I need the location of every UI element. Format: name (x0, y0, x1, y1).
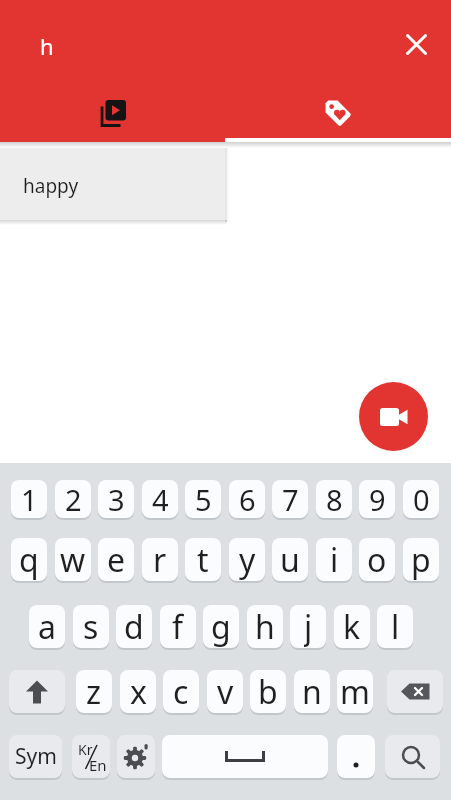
button[interactable]: c (163, 670, 199, 713)
button[interactable]: 2 (55, 480, 91, 518)
button[interactable] (387, 670, 443, 713)
button[interactable] (359, 382, 428, 451)
button[interactable]: s (73, 605, 109, 648)
staticText: j (304, 605, 313, 648)
button[interactable]: b (250, 670, 286, 713)
staticText: z (86, 670, 102, 713)
button[interactable] (385, 735, 440, 778)
button[interactable]: a (29, 605, 65, 648)
staticText: a (38, 605, 56, 648)
button[interactable]: 4 (142, 480, 178, 518)
staticText: g (211, 605, 231, 648)
staticText: 7 (282, 480, 299, 518)
button[interactable] (0, 84, 225, 142)
staticText: k (343, 605, 361, 648)
button[interactable]: g (203, 605, 239, 648)
staticText: y (239, 538, 256, 581)
staticText: m (340, 670, 370, 713)
staticText: d (124, 605, 144, 648)
staticText: o (367, 538, 387, 581)
button[interactable]: m (337, 670, 373, 713)
staticText: b (258, 670, 278, 713)
staticText: 6 (239, 480, 256, 518)
button[interactable]: 9 (359, 480, 395, 518)
button[interactable]: n (294, 670, 330, 713)
staticText: h (40, 31, 54, 61)
button[interactable]: f (160, 605, 196, 648)
staticText: 4 (152, 480, 169, 518)
button[interactable]: w (55, 538, 91, 581)
button[interactable]: 6 (229, 480, 265, 518)
button[interactable] (337, 735, 375, 778)
button[interactable] (398, 26, 434, 62)
staticText: x (130, 670, 147, 713)
staticText: v (217, 670, 234, 713)
button[interactable]: happy (0, 148, 225, 220)
button[interactable]: p (403, 538, 439, 581)
staticText: q (19, 538, 39, 581)
button[interactable]: o (359, 538, 395, 581)
button[interactable]: h (247, 605, 283, 648)
button[interactable]: e (98, 538, 134, 581)
button[interactable]: 0 (403, 480, 439, 518)
button[interactable]: t (185, 538, 221, 581)
button[interactable] (9, 670, 65, 713)
button[interactable]: j (290, 605, 326, 648)
staticText: t (197, 538, 209, 581)
button[interactable]: d (116, 605, 152, 648)
staticText: 3 (108, 480, 125, 518)
staticText: u (280, 538, 300, 581)
staticText: happy (23, 173, 79, 199)
button[interactable]: 7 (272, 480, 308, 518)
button[interactable]: i (316, 538, 352, 581)
staticText: n (302, 670, 322, 713)
button[interactable] (225, 84, 451, 142)
button[interactable]: z (76, 670, 112, 713)
staticText: Sym (15, 742, 57, 771)
staticText: c (173, 670, 189, 713)
staticText: e (107, 538, 126, 581)
staticText: 2 (65, 480, 82, 518)
button[interactable] (162, 735, 328, 778)
staticText: i (330, 538, 339, 581)
button[interactable]: v (207, 670, 243, 713)
staticText: En (89, 755, 107, 775)
staticText: l (391, 605, 400, 648)
staticText: f (172, 605, 184, 648)
button[interactable]: 8 (316, 480, 352, 518)
button[interactable]: q (11, 538, 47, 581)
staticText: r (153, 538, 167, 581)
staticText: p (411, 538, 431, 581)
staticText: Kr (78, 740, 93, 759)
button[interactable]: 1 (11, 480, 47, 518)
staticText: h (255, 605, 275, 648)
button[interactable]: 3 (98, 480, 134, 518)
staticText: s (83, 605, 99, 648)
staticText: 8 (326, 480, 343, 518)
button[interactable]: k (334, 605, 370, 648)
button[interactable]: y (229, 538, 265, 581)
button[interactable]: x (120, 670, 156, 713)
button[interactable]: Kr (72, 735, 110, 778)
button[interactable]: Sym (9, 735, 62, 778)
staticText: 0 (413, 480, 430, 518)
button[interactable] (117, 735, 155, 778)
staticText: 1 (21, 480, 38, 518)
staticText: w (60, 538, 86, 581)
staticText: 5 (195, 480, 212, 518)
button[interactable]: r (142, 538, 178, 581)
staticText: 9 (369, 480, 386, 518)
button[interactable]: u (272, 538, 308, 581)
button[interactable]: 5 (185, 480, 221, 518)
button[interactable]: l (377, 605, 413, 648)
